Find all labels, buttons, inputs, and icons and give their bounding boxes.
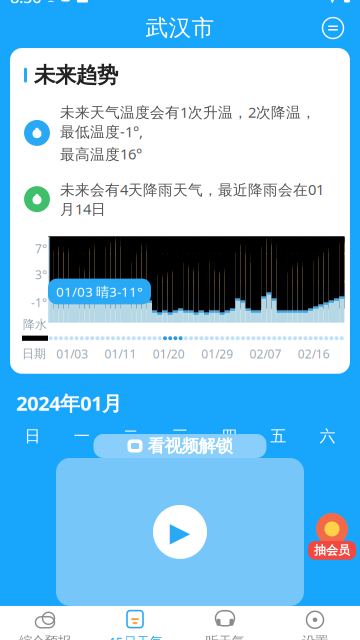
staticText: 最高温度16° xyxy=(60,144,142,164)
staticText: 看视频解锁 xyxy=(147,435,232,457)
button[interactable]: 抽会员 xyxy=(308,512,356,560)
staticText: ▶ xyxy=(169,517,190,547)
staticText: 五 xyxy=(270,426,286,446)
staticText: 01/03 xyxy=(56,346,88,362)
staticText: 听天气 xyxy=(205,633,244,640)
staticText: 未来天气温度会有1次升温，2次降温，最低温度-1°, xyxy=(60,102,316,141)
staticText: 02/16 xyxy=(298,346,330,362)
staticText: 四 xyxy=(221,426,237,446)
staticText: ▼ xyxy=(327,0,337,5)
staticText: 未来会有4天降雨天气，最近降雨会在01月14日 xyxy=(60,180,324,219)
button[interactable]: 45日天气 xyxy=(90,606,180,640)
button[interactable]: 综合预报 xyxy=(0,606,90,640)
staticText: 未来趋势 xyxy=(34,62,118,88)
staticText: 降水 xyxy=(23,317,47,332)
staticText: 日 xyxy=(25,426,41,446)
staticText: 日期 xyxy=(22,346,46,361)
staticText: 抽会员 xyxy=(314,543,350,558)
staticText: 综合预报 xyxy=(19,633,71,640)
staticText: 一 xyxy=(74,426,90,446)
staticText: ⤓ xyxy=(48,0,54,3)
staticText: 三 xyxy=(172,426,188,446)
staticText: 45日天气 xyxy=(107,633,162,640)
button[interactable]: 播放视频解锁 xyxy=(153,505,207,559)
button[interactable]: 设置 xyxy=(270,606,360,640)
staticText: 01/11 xyxy=(104,346,136,362)
staticText: -1° xyxy=(31,295,47,311)
staticText: 01/20 xyxy=(153,346,185,362)
staticText: 02/07 xyxy=(249,346,281,362)
staticText: 武汉市 xyxy=(145,14,214,42)
staticText: 01/03 晴3-11° xyxy=(56,283,143,300)
staticText: 二 xyxy=(123,426,139,446)
staticText: 3° xyxy=(35,267,47,283)
staticText: 设置 xyxy=(302,633,328,640)
staticText: 2024年01月 xyxy=(16,390,122,416)
staticText: 六 xyxy=(319,426,335,446)
staticText: 01/29 xyxy=(201,346,233,362)
staticText: 8:56 xyxy=(10,0,41,8)
button[interactable]: 听天气 xyxy=(180,606,270,640)
staticText: 7° xyxy=(35,241,47,257)
button[interactable]: 切换城市 xyxy=(316,11,350,45)
